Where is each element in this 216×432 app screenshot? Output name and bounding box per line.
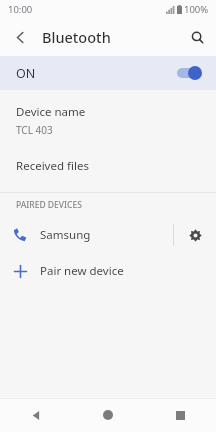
button[interactable]: Pair new device [0,253,216,289]
button[interactable]: Device settings [174,217,216,253]
staticText: Device name [16,104,86,120]
staticText: TCL 403 [16,123,53,137]
button[interactable]: Back [0,398,72,432]
staticText: Bluetooth [42,27,111,47]
staticText: Samsung [40,227,91,243]
button[interactable]: Received files [0,155,216,177]
staticText: 10:00 [8,3,33,16]
button[interactable]: Recents [144,398,216,432]
button[interactable]: ON [0,56,216,90]
staticText: PAIRED DEVICES [16,199,82,211]
staticText: ON [16,65,36,82]
button[interactable]: Search [183,23,211,51]
staticText: Pair new device [40,263,124,279]
staticText: 100% [184,3,209,16]
button[interactable]: Samsung [0,217,216,253]
button[interactable]: Device name [0,102,216,139]
button[interactable]: Back [6,23,34,51]
button[interactable]: Home [72,398,144,432]
staticText: Received files [16,158,89,174]
